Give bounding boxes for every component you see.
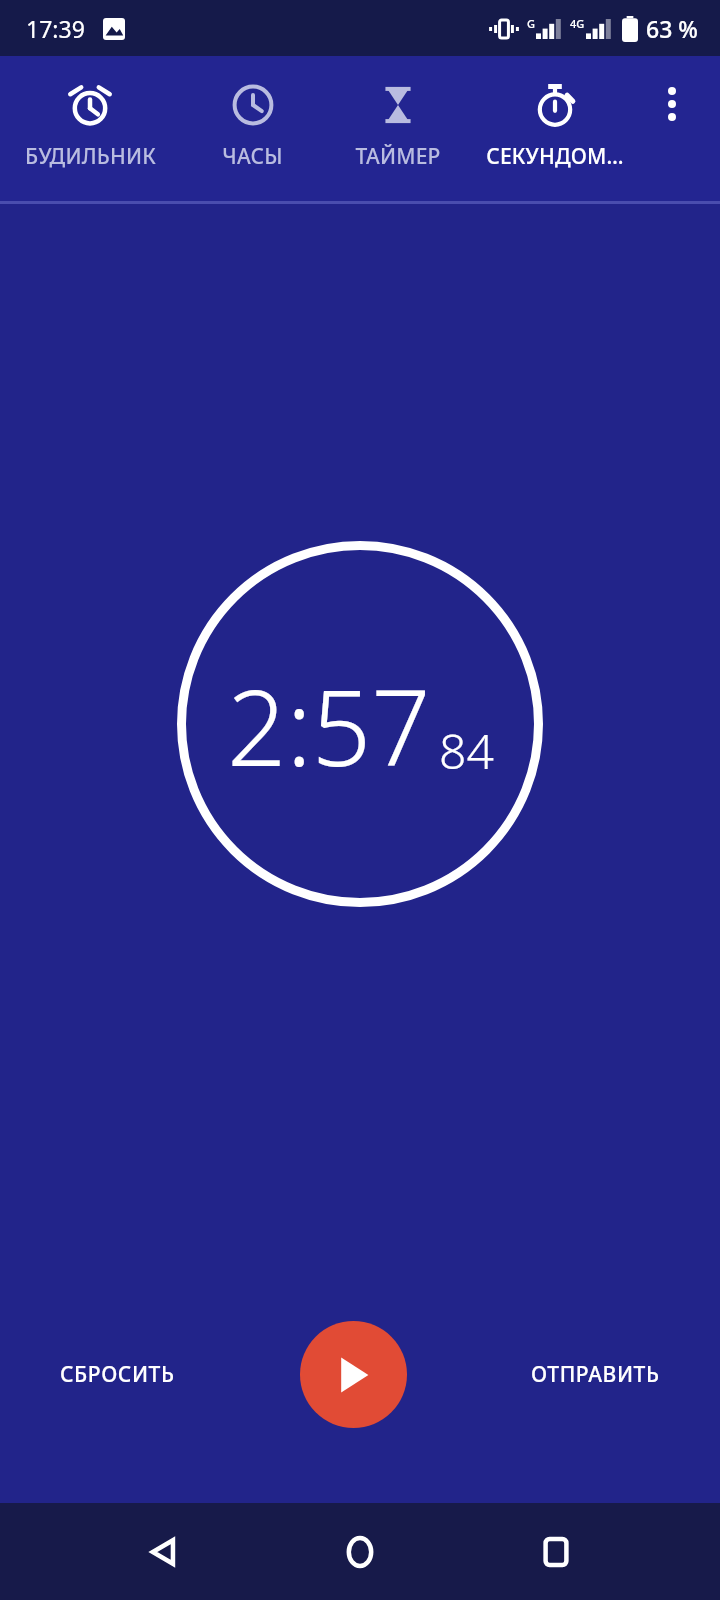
button[interactable]: ЧАСЫ (180, 56, 325, 201)
staticText: 4G (570, 16, 585, 31)
staticText: СБРОСИТЬ (60, 1360, 175, 1389)
button[interactable]: СБРОСИТЬ (36, 1346, 199, 1403)
staticText: ЧАСЫ (222, 142, 283, 171)
staticText: ОТПРАВИТЬ (531, 1360, 660, 1389)
staticText: 17:39 (26, 13, 85, 44)
staticText: 84 (439, 718, 494, 783)
button[interactable]: СЕКУНДОМ… (470, 56, 640, 201)
button[interactable]: Start (300, 1321, 407, 1428)
button[interactable]: ОТПРАВИТЬ (507, 1346, 684, 1403)
staticText: 63 % (646, 13, 698, 44)
button[interactable]: ТАЙМЕР (325, 56, 470, 201)
staticText: 2:57 (227, 655, 431, 797)
staticText: ТАЙМЕР (355, 142, 441, 171)
button[interactable]: Back (132, 1520, 196, 1584)
button[interactable]: Home (328, 1520, 392, 1584)
button[interactable]: БУДИЛЬНИК (0, 56, 180, 201)
button[interactable]: Recent apps (524, 1520, 588, 1584)
button[interactable]: More options (650, 82, 694, 126)
staticText: БУДИЛЬНИК (25, 142, 156, 171)
staticText: G (527, 16, 535, 31)
staticText: СЕКУНДОМ… (486, 142, 624, 171)
